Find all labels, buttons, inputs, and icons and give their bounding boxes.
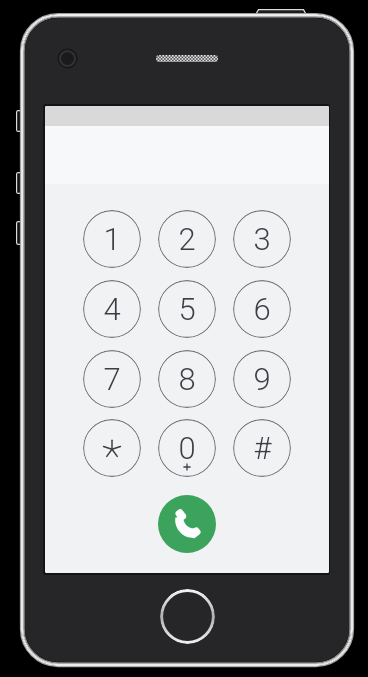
staticText: 7	[103, 361, 121, 397]
button[interactable]: Dial 1	[83, 210, 141, 268]
button[interactable]: Dial #	[233, 419, 291, 477]
button[interactable]: Dial 2	[158, 210, 216, 268]
staticText: 2	[178, 221, 196, 257]
button[interactable]: Volume down	[16, 221, 22, 245]
staticText: 5	[178, 291, 196, 327]
staticText: 1	[103, 221, 121, 257]
staticText: 4	[103, 291, 121, 327]
staticText: 0	[178, 430, 196, 466]
staticText: 6	[253, 291, 271, 327]
button[interactable]: Volume up	[16, 172, 22, 194]
button[interactable]: Dial 9	[233, 350, 291, 408]
button[interactable]: Home	[160, 589, 215, 644]
button[interactable]: Dial 4	[83, 280, 141, 338]
button[interactable]: Dial 5	[158, 280, 216, 338]
button[interactable]: Silent switch	[16, 110, 22, 132]
button[interactable]: Dial 3	[233, 210, 291, 268]
button[interactable]: Dial 0	[158, 419, 216, 477]
staticText: 8	[178, 361, 196, 397]
button[interactable]: Call	[158, 495, 216, 553]
staticText: 3	[253, 221, 271, 257]
button[interactable]: Dial 8	[158, 350, 216, 408]
staticText: 9	[253, 361, 271, 397]
button[interactable]: Dial 6	[233, 280, 291, 338]
button[interactable]: Dial 7	[83, 350, 141, 408]
button[interactable]: Dial *	[83, 419, 141, 477]
button[interactable]: Power button	[256, 8, 306, 14]
staticText: #	[253, 430, 272, 466]
